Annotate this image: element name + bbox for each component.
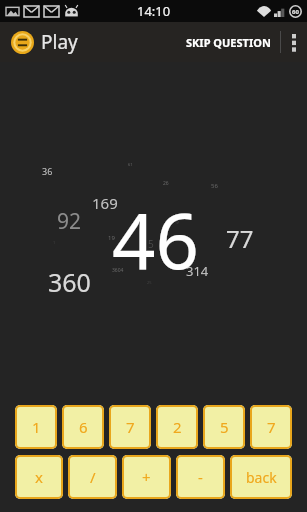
- staticText: 3604: [112, 267, 124, 274]
- staticText: 56: [211, 182, 218, 190]
- staticText: 7: [267, 417, 276, 437]
- staticText: 360: [48, 265, 91, 299]
- button[interactable]: 7: [109, 405, 151, 449]
- button[interactable]: 1: [15, 405, 57, 449]
- staticText: x: [35, 467, 43, 487]
- staticText: 92: [57, 207, 82, 236]
- button[interactable]: 5: [203, 405, 245, 449]
- button[interactable]: SKIP QUESTION: [177, 25, 280, 60]
- staticText: 169: [92, 193, 118, 213]
- button[interactable]: Play: [11, 27, 78, 57]
- staticText: 26: [163, 180, 169, 187]
- staticText: 77: [226, 222, 254, 255]
- button[interactable]: -: [176, 455, 225, 499]
- staticText: 5: [148, 237, 154, 251]
- staticText: SKIP QUESTION: [186, 35, 271, 50]
- staticText: 60: [292, 8, 299, 16]
- button[interactable]: +: [122, 455, 171, 499]
- staticText: Play: [41, 29, 78, 55]
- staticText: 7: [126, 417, 135, 437]
- button[interactable]: More options: [281, 22, 307, 62]
- button[interactable]: 7: [250, 405, 292, 449]
- staticText: 1: [53, 240, 56, 245]
- staticText: 2: [173, 417, 182, 437]
- button[interactable]: 2: [156, 405, 198, 449]
- staticText: -: [198, 467, 203, 487]
- staticText: 25: [147, 280, 152, 285]
- button[interactable]: x: [15, 455, 63, 499]
- button[interactable]: /: [68, 455, 117, 499]
- staticText: 9: [176, 219, 179, 226]
- staticText: 14:10: [137, 2, 171, 20]
- staticText: 46: [112, 188, 199, 292]
- staticText: 19: [108, 234, 115, 242]
- staticText: +: [142, 467, 151, 487]
- staticText: 36: [42, 165, 53, 177]
- staticText: 314: [186, 262, 209, 280]
- staticText: back: [246, 468, 277, 487]
- staticText: 5: [220, 417, 229, 437]
- button[interactable]: 6: [62, 405, 104, 449]
- staticText: 1: [32, 417, 41, 437]
- staticText: 6: [79, 417, 88, 437]
- staticText: 61: [128, 162, 133, 167]
- staticText: /: [90, 467, 96, 487]
- button[interactable]: back: [230, 455, 292, 499]
